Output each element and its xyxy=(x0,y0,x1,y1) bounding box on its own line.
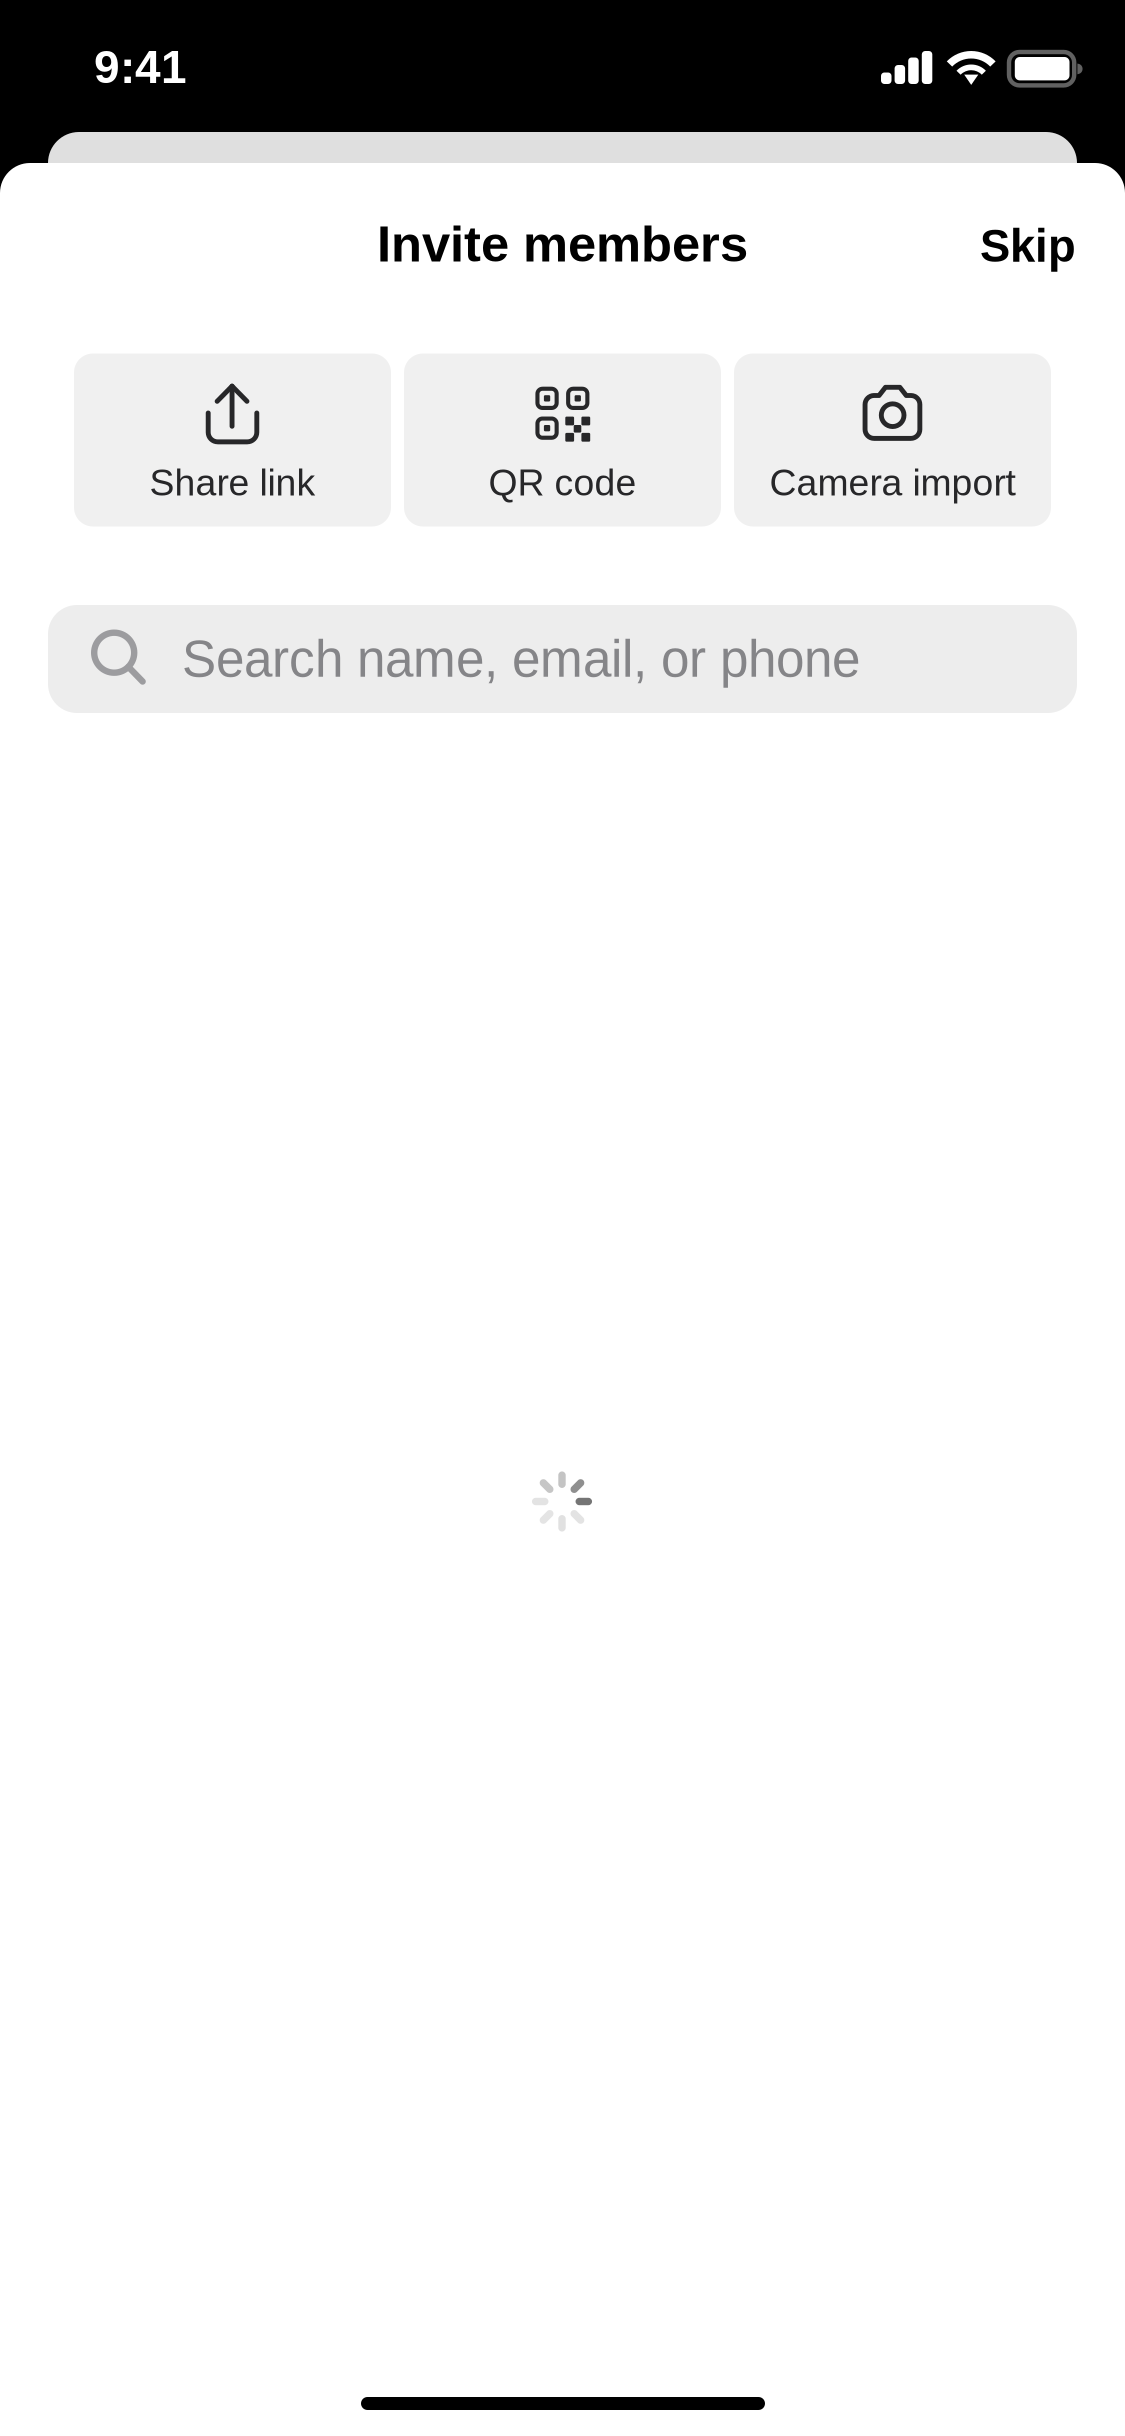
button[interactable]: QR code xyxy=(404,353,721,526)
staticText: QR code xyxy=(488,462,636,503)
button[interactable]: Share link xyxy=(74,353,391,526)
staticText: Skip xyxy=(980,221,1076,271)
staticText: Camera import xyxy=(769,462,1015,503)
staticText: Invite members xyxy=(377,216,748,272)
button[interactable]: Camera import xyxy=(734,353,1051,526)
button[interactable]: Skip xyxy=(946,198,1110,294)
staticText: 9:41 xyxy=(94,41,187,93)
staticText: Search name, email, or phone xyxy=(182,630,860,688)
button[interactable]: Search name, email, or phone xyxy=(48,605,1077,713)
staticText: Share link xyxy=(149,462,315,503)
